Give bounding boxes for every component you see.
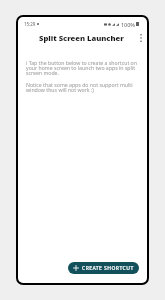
- staticText: Split Screen Launcher: [39, 33, 124, 43]
- staticText: ℹ Tap the button below to create a short…: [26, 59, 138, 76]
- staticText: Notice that some apps do not support mul…: [26, 81, 138, 93]
- staticText: 15:29: [24, 21, 36, 27]
- staticText: CREATE SHORTCUT: [82, 265, 134, 272]
- staticText: 100%: [121, 21, 135, 28]
- button[interactable]: More options: [135, 32, 147, 44]
- button[interactable]: CREATE SHORTCUT: [68, 262, 139, 274]
